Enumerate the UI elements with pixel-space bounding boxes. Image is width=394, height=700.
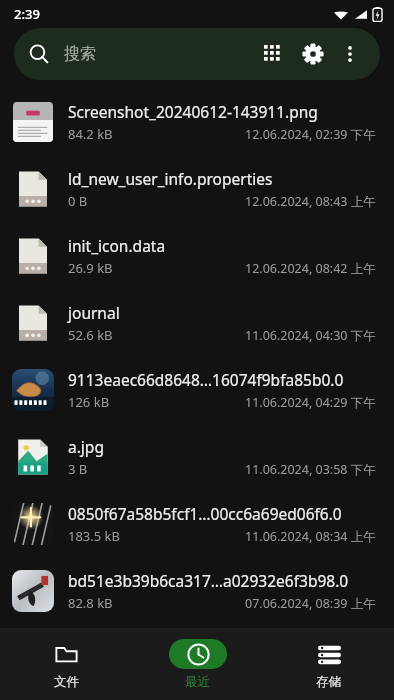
staticText: 183.5 kB <box>68 527 121 545</box>
staticText: 最近 <box>185 674 210 690</box>
staticText: 0850f67a58b5fcf1…00cc6a69ed06f6.0 <box>68 503 342 524</box>
button[interactable]: 存储 <box>263 628 394 700</box>
staticText: 07.06.2024, 08:39 上午 <box>245 595 376 612</box>
staticText: 2:39 <box>14 5 40 23</box>
staticText: 11.06.2024, 04:30 下午 <box>245 327 376 344</box>
staticText: bd51e3b39b6ca317…a02932e6f3b98.0 <box>68 570 349 591</box>
button[interactable]: init_icon.data <box>0 222 394 289</box>
button[interactable]: Settings <box>296 37 330 71</box>
staticText: 文件 <box>54 674 79 690</box>
staticText: Screenshot_20240612-143911.png <box>68 101 318 122</box>
staticText: 0 B <box>68 192 88 210</box>
staticText: ld_new_user_info.properties <box>68 168 273 189</box>
staticText: 82.8 kB <box>68 594 113 612</box>
button[interactable]: Search <box>14 28 380 80</box>
button[interactable]: 文件 <box>0 628 132 700</box>
staticText: 存储 <box>316 674 341 690</box>
button[interactable]: Screenshot_20240612-143911.png <box>0 88 394 155</box>
staticText: 12.06.2024, 08:42 上午 <box>245 260 376 277</box>
button[interactable]: bd51e3b39b6ca317…a02932e6f3b98.0 <box>0 557 394 624</box>
button[interactable]: Apps grid <box>256 37 290 71</box>
staticText: 12.06.2024, 08:43 上午 <box>245 193 376 210</box>
staticText: 26.9 kB <box>68 259 113 277</box>
button[interactable]: ld_new_user_info.properties <box>0 155 394 222</box>
staticText: 11.06.2024, 04:29 下午 <box>245 394 376 411</box>
staticText: 11.06.2024, 08:34 上午 <box>245 528 376 545</box>
button[interactable]: 9113eaec66d8648…16074f9bfa85b0.0 <box>0 356 394 423</box>
other: Search <box>28 43 50 65</box>
staticText: 126 kB <box>68 393 110 411</box>
button[interactable]: 0850f67a58b5fcf1…00cc6a69ed06f6.0 <box>0 490 394 557</box>
button[interactable]: 最近 <box>132 628 263 700</box>
staticText: 11.06.2024, 03:58 下午 <box>245 461 376 478</box>
button[interactable]: journal <box>0 289 394 356</box>
staticText: 9113eaec66d8648…16074f9bfa85b0.0 <box>68 369 344 390</box>
button[interactable]: More options <box>334 38 366 70</box>
staticText: 3 B <box>68 460 88 478</box>
button[interactable]: a.jpg <box>0 423 394 490</box>
staticText: init_icon.data <box>68 235 166 256</box>
staticText: journal <box>68 302 120 323</box>
staticText: 52.6 kB <box>68 326 113 344</box>
staticText: 84.2 kB <box>68 125 113 143</box>
staticText: 搜索 <box>64 44 96 64</box>
staticText: 12.06.2024, 02:39 下午 <box>245 126 376 143</box>
staticText: a.jpg <box>68 436 104 457</box>
